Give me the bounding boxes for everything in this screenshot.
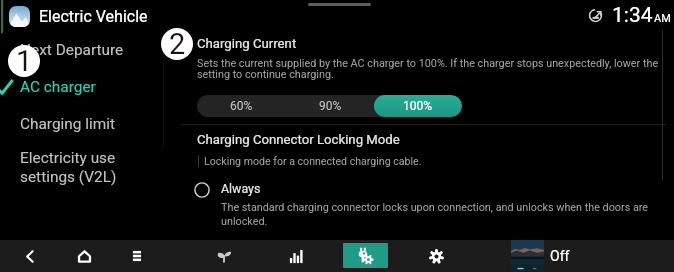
- staticText: 90%: [319, 99, 342, 113]
- button[interactable]: 100%: [374, 95, 462, 117]
- button[interactable]: EV charging: [343, 243, 388, 268]
- staticText: 60%: [230, 99, 253, 113]
- staticText: Off: [550, 248, 570, 264]
- button[interactable]: 90%: [286, 95, 374, 117]
- staticText: Charging Current: [197, 36, 297, 51]
- staticText: The standard charging connector locks up…: [221, 201, 649, 227]
- button[interactable]: Electricity use settings (V2L): [0, 147, 162, 188]
- staticText: Electricity use settings (V2L): [20, 149, 117, 186]
- button[interactable]: Charging limit: [0, 113, 162, 135]
- staticText: 2: [169, 28, 186, 59]
- button[interactable]: Menu: [121, 240, 153, 272]
- staticText: 1:34: [612, 3, 653, 28]
- button[interactable]: Media: [511, 240, 544, 272]
- button[interactable]: Statistics: [280, 240, 312, 272]
- button[interactable]: AC charger: [0, 76, 162, 98]
- button[interactable]: Driving mode: [586, 6, 604, 24]
- staticText: 1: [16, 45, 33, 76]
- staticText: Sets the current supplied by the AC char…: [197, 57, 659, 81]
- button[interactable]: Settings: [420, 240, 452, 272]
- staticText: Next Departure: [20, 41, 124, 59]
- staticText: 100%: [403, 99, 433, 113]
- button[interactable]: Back: [13, 240, 45, 272]
- button[interactable]: Home: [68, 240, 100, 272]
- staticText: Electric Vehicle: [39, 7, 148, 26]
- button[interactable]: 60%: [197, 95, 286, 117]
- button[interactable]: Next Departure: [0, 39, 162, 61]
- staticText: Locking mode for a connected charging ca…: [204, 155, 422, 167]
- staticText: Charging limit: [20, 115, 116, 133]
- staticText: AC charger: [20, 78, 96, 96]
- staticText: Always: [221, 181, 261, 196]
- button[interactable]: Eco driving: [208, 240, 240, 272]
- button[interactable]: Always: [194, 181, 664, 227]
- staticText: AM: [654, 12, 671, 25]
- staticText: Charging Connector Locking Mode: [197, 132, 400, 147]
